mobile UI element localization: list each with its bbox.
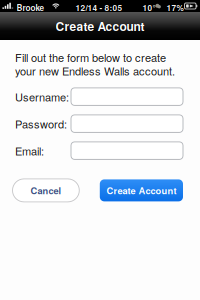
staticText: 10° bbox=[143, 2, 156, 13]
staticText: Fill out the form below to create your n… bbox=[15, 49, 175, 79]
staticText: Password: bbox=[15, 116, 67, 131]
button[interactable]: Password: bbox=[71, 115, 183, 132]
button[interactable]: Create Account bbox=[100, 179, 183, 201]
staticText: Username: bbox=[15, 89, 69, 104]
button[interactable]: Email: bbox=[71, 142, 183, 159]
staticText: 12/14 - 8:05 bbox=[76, 2, 123, 13]
staticText: 17% bbox=[167, 2, 184, 13]
staticText: Cancel bbox=[30, 184, 61, 197]
button[interactable]: Username: bbox=[71, 88, 183, 105]
button[interactable]: Cancel bbox=[12, 179, 79, 202]
staticText: Email: bbox=[15, 143, 44, 158]
staticText: Brooke bbox=[17, 2, 45, 13]
staticText: Create Account bbox=[106, 184, 176, 197]
staticText: Create Account bbox=[55, 17, 144, 35]
